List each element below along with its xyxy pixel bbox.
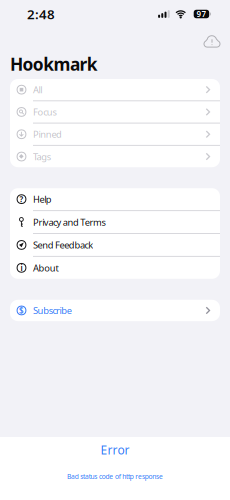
staticText: $ [19,305,24,316]
staticText: Error [100,442,129,458]
button[interactable]: All [10,79,220,100]
button[interactable]: ? [10,188,220,210]
staticText: Focus [33,106,56,118]
staticText: Subscribe [33,304,72,317]
staticText: Bad status code of http response [67,472,163,481]
button[interactable]: Tags [10,146,220,167]
button[interactable]: $ [10,300,220,321]
staticText: ? [19,194,23,204]
staticText: 2:48 [27,5,55,23]
staticText: Privacy and Terms [33,216,106,228]
staticText: Help [33,193,52,205]
staticText: i [20,262,22,273]
staticText: Pinned [33,128,62,140]
button[interactable]: Error [0,437,230,500]
staticText: About [33,262,58,274]
staticText: Send Feedback [33,239,93,251]
staticText: 97 [196,9,206,19]
button[interactable]: Privacy and Terms [10,211,220,233]
button[interactable]: i [10,257,220,279]
staticText: Hookmark [10,52,98,75]
button[interactable]: Pinned [10,124,220,145]
staticText: All [33,83,42,96]
staticText: Tags [33,150,51,163]
button[interactable]: Sync error [202,32,222,50]
button[interactable]: Send Feedback [10,234,220,256]
button[interactable]: Focus [10,101,220,123]
